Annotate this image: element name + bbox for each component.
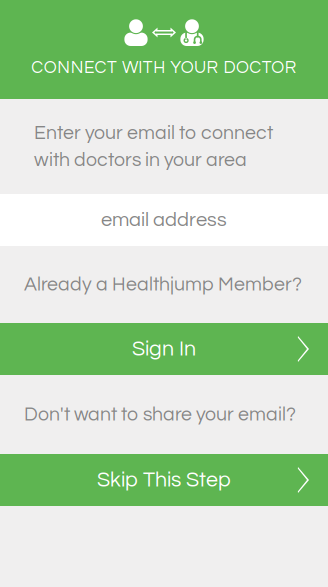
staticText: Skip This Step [97,469,231,491]
button[interactable]: Skip This Step [0,454,328,506]
staticText: CONNECT WITH YOUR DOCTOR [31,59,297,77]
staticText: Sign In [132,338,196,360]
staticText: email address [101,210,227,230]
button[interactable]: email address [0,194,328,246]
staticText: Don't want to share your email? [24,404,296,424]
staticText: Already a Healthjump Member? [24,274,302,294]
staticText: with doctors in your area [34,150,247,170]
button[interactable]: Sign In [0,323,328,375]
staticText: Enter your email to connect [34,123,273,143]
